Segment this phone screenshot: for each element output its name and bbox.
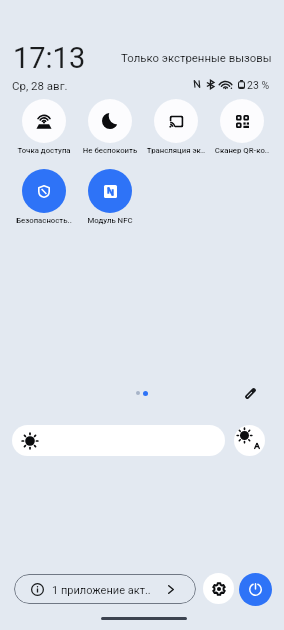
button[interactable]: Модуль NFC bbox=[77, 169, 143, 225]
button[interactable]: Изменить bbox=[237, 380, 264, 407]
staticText: Модуль NFC bbox=[77, 216, 143, 225]
staticText: Только экстренные вызовы bbox=[121, 51, 272, 64]
staticText: 23 % bbox=[247, 79, 270, 91]
staticText: Ср, 28 авг. bbox=[12, 79, 68, 92]
button[interactable]: Точка доступа bbox=[11, 99, 77, 155]
staticText: 17:13 bbox=[13, 41, 86, 75]
staticText: 1 приложение акт.. bbox=[52, 584, 151, 597]
button[interactable]: Безопасность.. bbox=[11, 169, 77, 225]
button[interactable]: Питание bbox=[239, 573, 272, 606]
button[interactable]: Не беспокоить bbox=[77, 99, 143, 155]
staticText: Трансляция эк.. bbox=[143, 146, 209, 155]
staticText: Не беспокоить bbox=[77, 146, 143, 155]
staticText: Точка доступа bbox=[11, 146, 77, 155]
button[interactable]: Настройки bbox=[203, 573, 234, 604]
button[interactable]: Трансляция эк.. bbox=[143, 99, 209, 155]
staticText: Безопасность.. bbox=[11, 216, 77, 225]
button[interactable]: Яркость bbox=[12, 425, 225, 456]
button[interactable]: 1 приложение акт.. bbox=[14, 574, 196, 604]
button[interactable]: Автояркость bbox=[234, 425, 265, 456]
staticText: Сканер QR-ко.. bbox=[209, 146, 275, 155]
button[interactable]: Сканер QR-ко.. bbox=[209, 99, 275, 155]
